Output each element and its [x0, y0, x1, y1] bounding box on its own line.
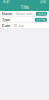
staticText: Type [2, 18, 10, 22]
staticText: Name [2, 12, 12, 16]
staticText: Title [20, 5, 28, 10]
staticText: Open [37, 12, 45, 15]
button[interactable]: Type [0, 17, 49, 23]
staticText: 9:41 [3, 0, 9, 4]
button[interactable]: Name [0, 11, 49, 17]
staticText: Date [2, 24, 10, 28]
staticText: 12 Jun [14, 24, 24, 28]
staticText: Active [36, 18, 45, 21]
staticText: Value one [16, 12, 32, 16]
staticText: âŸ€ [40, 0, 46, 4]
button[interactable]: Date [0, 23, 49, 29]
